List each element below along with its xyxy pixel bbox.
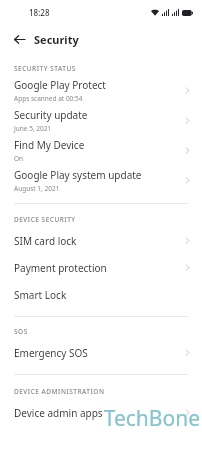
button[interactable]: Find My Device: [0, 135, 202, 165]
staticText: SECURITY STATUS: [14, 64, 202, 73]
staticText: SIM card lock: [14, 234, 77, 248]
staticText: Emergency SOS: [14, 346, 88, 360]
staticText: Device admin apps: [14, 406, 103, 420]
staticText: June 5, 2021: [14, 124, 52, 133]
button[interactable]: Smart Lock: [0, 281, 202, 308]
button[interactable]: Payment protection: [0, 254, 202, 281]
staticText: Smart Lock: [14, 288, 67, 302]
staticText: DEVICE ADMINISTRATION: [14, 387, 202, 396]
staticText: Security: [34, 32, 79, 47]
button[interactable]: Back: [11, 31, 27, 47]
staticText: Find My Device: [14, 138, 85, 152]
staticText: TechBone: [103, 404, 200, 433]
button[interactable]: Google Play system update: [0, 165, 202, 195]
staticText: Security update: [14, 108, 88, 122]
staticText: Google Play Protect: [14, 78, 106, 92]
staticText: SOS: [14, 327, 202, 336]
staticText: August 1, 2021: [14, 184, 60, 193]
staticText: Google Play system update: [14, 168, 142, 182]
button[interactable]: SIM card lock: [0, 227, 202, 254]
staticText: Apps scanned at 00:54: [14, 94, 83, 103]
button[interactable]: Emergency SOS: [0, 339, 202, 366]
staticText: On: [14, 154, 24, 163]
staticText: DEVICE SECURITY: [14, 215, 202, 224]
staticText: Payment protection: [14, 261, 107, 275]
button[interactable]: Device admin apps: [0, 399, 202, 426]
button[interactable]: Security update: [0, 105, 202, 135]
staticText: 18:28: [29, 7, 50, 18]
button[interactable]: Google Play Protect: [0, 75, 202, 105]
